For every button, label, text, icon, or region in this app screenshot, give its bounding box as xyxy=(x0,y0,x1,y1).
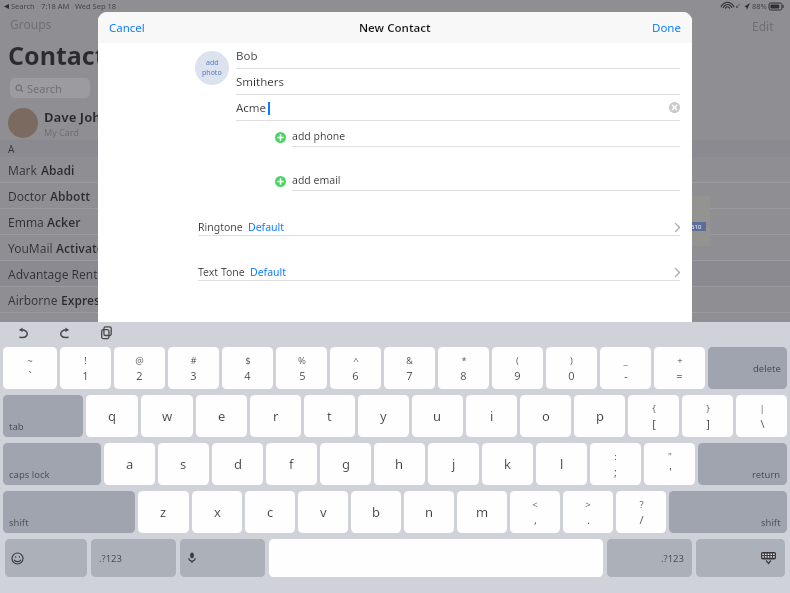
button[interactable]: u xyxy=(412,395,463,437)
staticText: add xyxy=(206,58,219,68)
button[interactable]: Paste xyxy=(97,323,117,343)
button[interactable]: y xyxy=(358,395,409,437)
staticText: m xyxy=(476,503,489,521)
staticText: ? xyxy=(639,498,644,511)
button[interactable]: Airborne xyxy=(0,287,790,312)
staticText: | xyxy=(759,402,765,415)
button[interactable]: s xyxy=(158,443,209,485)
button[interactable]: Edit xyxy=(752,18,774,34)
button[interactable]: _ xyxy=(600,347,651,389)
button[interactable]: Done xyxy=(652,20,681,36)
button[interactable]: Acme xyxy=(236,95,680,121)
button[interactable]: Add photo xyxy=(195,51,229,85)
button[interactable]: .?123 xyxy=(607,539,692,577)
button[interactable]: ~ xyxy=(3,347,57,389)
button[interactable]: e xyxy=(196,395,247,437)
button[interactable]: ? xyxy=(616,491,666,533)
button[interactable]: # xyxy=(168,347,219,389)
button[interactable]: a xyxy=(104,443,155,485)
staticText: & xyxy=(406,354,413,367)
button[interactable]: ! xyxy=(60,347,111,389)
button[interactable]: * xyxy=(438,347,489,389)
button[interactable]: g xyxy=(320,443,371,485)
button[interactable]: ( xyxy=(492,347,543,389)
button[interactable]: i xyxy=(466,395,517,437)
button[interactable]: q xyxy=(86,395,138,437)
staticText: ↙ xyxy=(735,2,741,10)
button[interactable]: % xyxy=(276,347,327,389)
button[interactable]: p xyxy=(574,395,625,437)
button[interactable]: .?123 xyxy=(91,539,176,577)
button[interactable]: tab xyxy=(3,395,83,437)
button[interactable]: Doctor xyxy=(0,183,790,208)
button[interactable]: & xyxy=(384,347,435,389)
staticText: shift xyxy=(9,516,29,529)
button[interactable]: ) xyxy=(546,347,597,389)
button[interactable]: f xyxy=(266,443,317,485)
button[interactable]: < xyxy=(510,491,560,533)
button[interactable]: Emoji xyxy=(5,539,87,577)
staticText: Airborne xyxy=(8,292,61,308)
button[interactable]: b xyxy=(351,491,401,533)
button[interactable]: Mark xyxy=(0,157,790,182)
button[interactable]: h xyxy=(374,443,425,485)
staticText: Acker xyxy=(47,214,81,230)
button[interactable]: $ xyxy=(222,347,273,389)
button[interactable]: l xyxy=(536,443,587,485)
button[interactable]: j xyxy=(428,443,479,485)
staticText: 610 xyxy=(691,223,702,231)
button[interactable]: caps lock xyxy=(3,443,101,485)
staticText: s xyxy=(180,455,187,473)
button[interactable]: > xyxy=(563,491,613,533)
staticText: g xyxy=(342,455,350,473)
button[interactable]: + xyxy=(654,347,705,389)
button[interactable]: delete xyxy=(708,347,787,389)
staticText: Default xyxy=(248,220,285,234)
button[interactable]: " xyxy=(644,443,695,485)
button[interactable]: w xyxy=(141,395,193,437)
button[interactable]: Text Tone xyxy=(98,264,692,281)
button[interactable]: add phone xyxy=(98,129,692,147)
button[interactable]: Redo xyxy=(55,323,75,343)
button[interactable]: } xyxy=(682,395,733,437)
button[interactable]: c xyxy=(245,491,295,533)
button[interactable]: shift xyxy=(669,491,787,533)
button[interactable]: d xyxy=(212,443,263,485)
button[interactable]: r xyxy=(250,395,301,437)
button[interactable]: @ xyxy=(114,347,165,389)
button[interactable]: return xyxy=(698,443,787,485)
button[interactable]: Emma xyxy=(0,209,790,234)
button[interactable]: YouMail xyxy=(0,235,790,260)
button[interactable]: Dictate xyxy=(180,539,265,577)
staticText: Bob xyxy=(236,48,258,64)
button[interactable]: Hide keyboard xyxy=(696,539,785,577)
button[interactable]: { xyxy=(628,395,679,437)
button[interactable]: m xyxy=(457,491,507,533)
button[interactable]: ^ xyxy=(330,347,381,389)
button[interactable]: shift xyxy=(3,491,135,533)
staticText: v xyxy=(320,503,327,521)
button[interactable]: o xyxy=(520,395,571,437)
button[interactable]: t xyxy=(304,395,355,437)
staticText: 8 xyxy=(460,368,467,383)
button[interactable]: Advantage Rent A C xyxy=(0,261,790,286)
button[interactable]: x xyxy=(192,491,242,533)
button[interactable]: k xyxy=(482,443,533,485)
staticText: .?123 xyxy=(99,552,122,565)
button[interactable]: v xyxy=(298,491,348,533)
button[interactable]: Smithers xyxy=(236,69,680,95)
button[interactable]: Undo xyxy=(13,323,33,343)
staticText: 88% xyxy=(752,1,767,11)
staticText: Done xyxy=(652,20,681,36)
button[interactable]: add email xyxy=(98,173,692,191)
button[interactable]: Bob xyxy=(236,43,680,69)
button[interactable]: z xyxy=(138,491,189,533)
button[interactable]: Search xyxy=(10,78,90,98)
button[interactable]: Cancel xyxy=(109,20,145,36)
staticText: e xyxy=(218,407,226,425)
button[interactable]: n xyxy=(404,491,454,533)
button[interactable]: | xyxy=(736,395,787,437)
button[interactable]: : xyxy=(590,443,641,485)
button[interactable]: Ringtone xyxy=(98,219,692,236)
